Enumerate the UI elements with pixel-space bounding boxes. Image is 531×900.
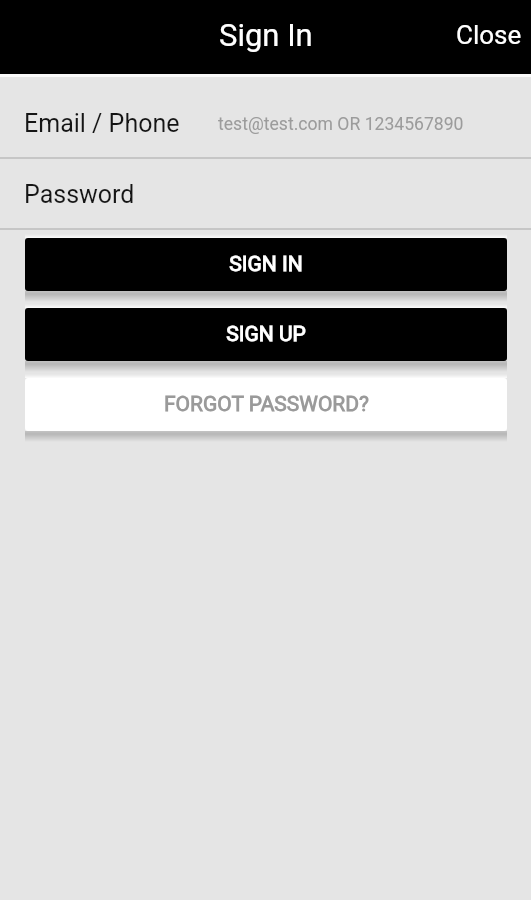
button[interactable]: SIGN IN [25,238,507,291]
button[interactable]: SIGN UP [25,308,507,361]
staticText: Close [456,20,522,50]
staticText: FORGOT PASSWORD? [164,392,369,417]
button[interactable]: Password input [0,159,531,228]
button[interactable]: Email / Phone input [0,77,531,157]
staticText: test@test.com OR 1234567890 [218,114,464,135]
button[interactable]: FORGOT PASSWORD? [25,378,507,431]
staticText: SIGN UP [226,322,306,347]
staticText: Sign In [219,17,313,53]
staticText: SIGN IN [229,252,303,277]
staticText: Email / Phone [24,109,180,138]
staticText: Password [24,180,135,209]
button[interactable]: Close [428,8,531,66]
